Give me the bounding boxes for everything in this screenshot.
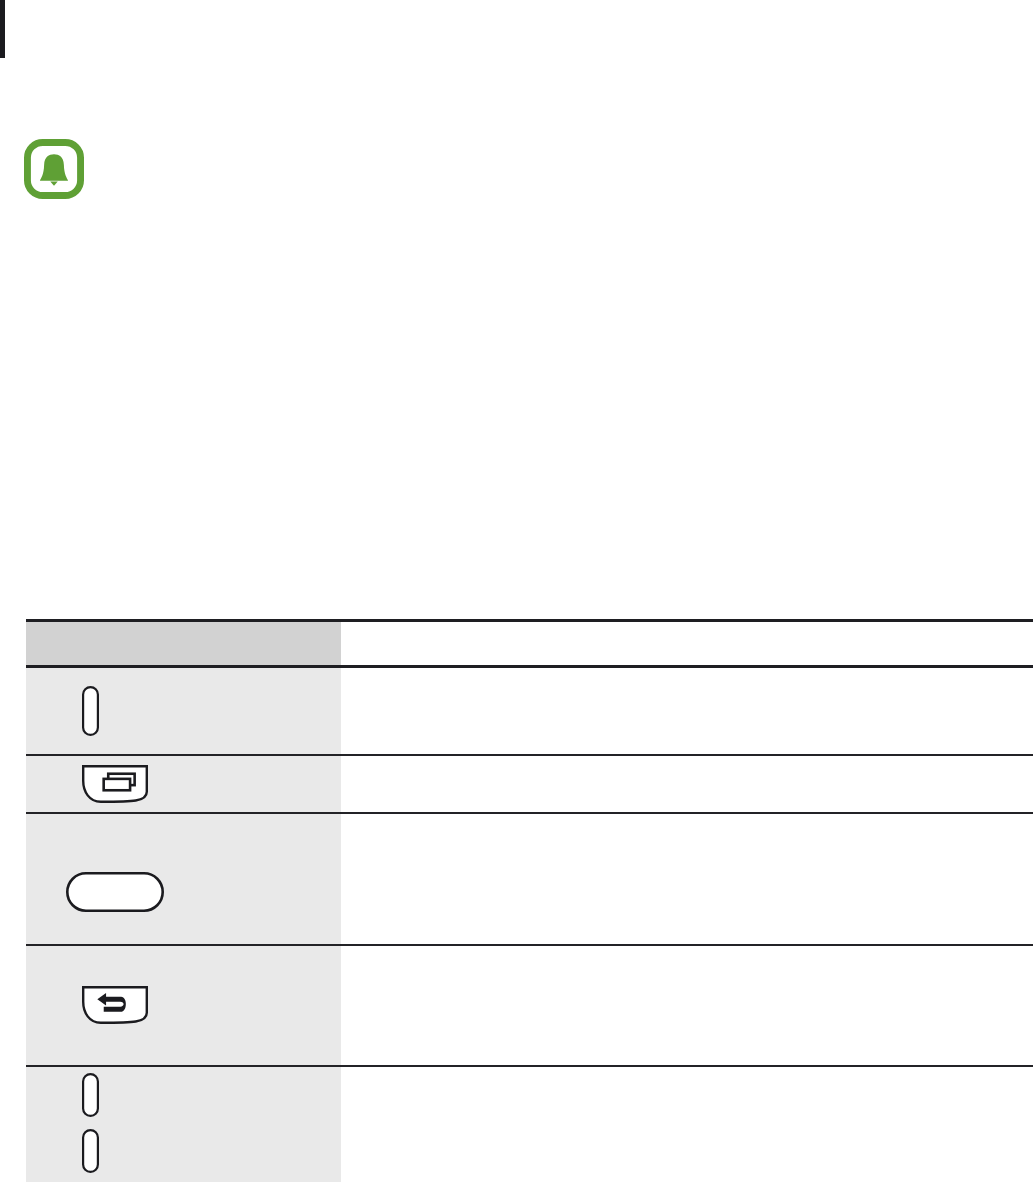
other: Home key: [66, 872, 164, 912]
other: Back key: [82, 986, 148, 1024]
button[interactable]: Volume up key: [0, 1067, 1033, 1182]
other: Volume up key: [82, 1073, 99, 1117]
other: Recents key: [82, 765, 148, 803]
button[interactable]: Power key: [0, 668, 1033, 754]
other: Power key: [82, 686, 99, 736]
button[interactable]: Home key: [0, 814, 1033, 944]
button[interactable]: Recents key: [0, 756, 1033, 812]
other: Volume down key: [82, 1129, 99, 1173]
button[interactable]: [0, 622, 1033, 665]
button[interactable]: Back key: [0, 946, 1033, 1065]
